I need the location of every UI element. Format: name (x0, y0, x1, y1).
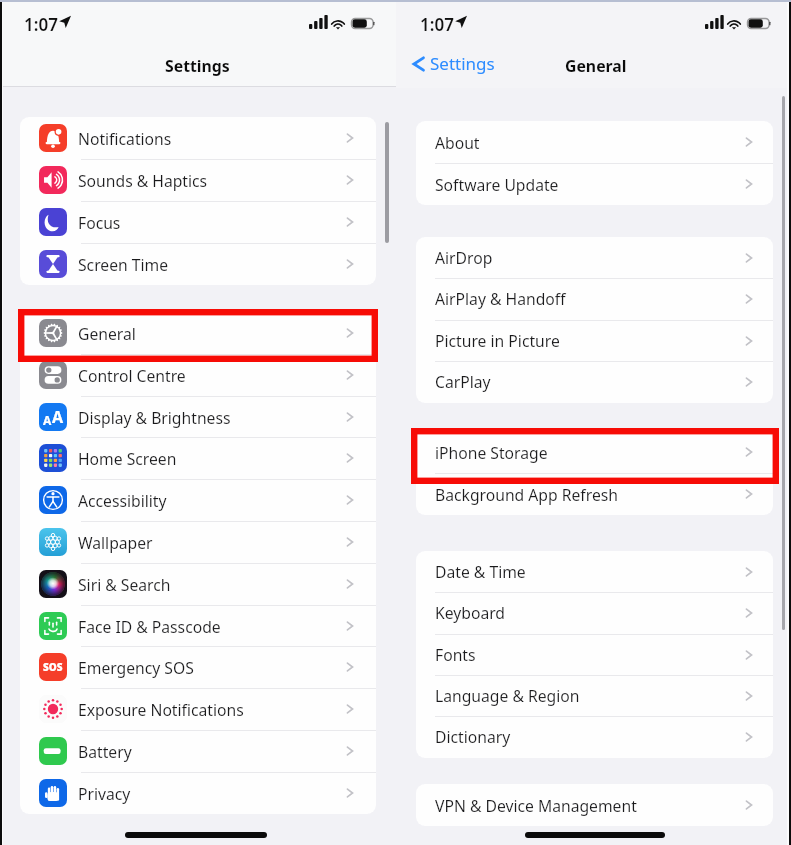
button[interactable]: Dictionary (416, 716, 773, 757)
button[interactable]: Notifications (20, 117, 376, 159)
staticText: VPN & Device Management (435, 795, 637, 816)
staticText: Fonts (435, 644, 476, 665)
button[interactable]: AirDrop (416, 237, 773, 278)
staticText: Battery (78, 741, 132, 762)
staticText: Exposure Notifications (78, 699, 244, 720)
button[interactable]: Focus (20, 201, 376, 243)
staticText: Sounds & Haptics (78, 170, 208, 191)
staticText: Emergency SOS (78, 657, 194, 678)
staticText: About (435, 132, 480, 153)
staticText: Date & Time (435, 561, 526, 582)
button[interactable]: iPhone Storage (416, 431, 773, 473)
button[interactable]: CarPlay (416, 361, 773, 402)
button[interactable]: AirPlay & Handoff (416, 278, 773, 319)
staticText: Privacy (78, 783, 131, 804)
button[interactable]: Battery (20, 730, 376, 772)
staticText: Settings (430, 52, 495, 75)
button[interactable]: Privacy (20, 772, 376, 814)
staticText: Siri & Search (78, 574, 171, 595)
button[interactable]: Date & Time (416, 551, 773, 592)
staticText: Language & Region (435, 685, 580, 706)
staticText: General (565, 55, 627, 77)
button[interactable]: Back to Settings (412, 52, 495, 75)
button[interactable]: About (416, 121, 773, 163)
staticText: Software Update (435, 174, 559, 195)
button[interactable]: Screen Time (20, 243, 376, 285)
staticText: Settings (165, 55, 230, 77)
button[interactable]: Home Screen (20, 437, 376, 479)
button[interactable]: General (20, 312, 376, 354)
staticText: Background App Refresh (435, 484, 618, 505)
button[interactable]: Language & Region (416, 675, 773, 716)
staticText: Face ID & Passcode (78, 616, 221, 637)
staticText: Focus (78, 212, 121, 233)
staticText: Control Centre (78, 365, 186, 386)
staticText: Notifications (78, 128, 172, 149)
staticText: AirDrop (435, 247, 493, 268)
staticText: A (43, 412, 52, 428)
staticText: Picture in Picture (435, 330, 560, 351)
staticText: iPhone Storage (435, 442, 548, 463)
button[interactable]: Picture in Picture (416, 320, 773, 361)
button[interactable]: Background App Refresh (416, 473, 773, 515)
staticText: General (78, 323, 136, 344)
button[interactable]: A (20, 396, 376, 438)
button[interactable]: Siri & Search (20, 563, 376, 605)
staticText: 1:07 (420, 13, 454, 36)
button[interactable]: SOS (20, 646, 376, 688)
staticText: Home Screen (78, 448, 177, 469)
button[interactable]: VPN & Device Management (416, 784, 773, 826)
staticText: Accessibility (78, 490, 167, 511)
button[interactable]: Accessibility (20, 479, 376, 521)
button[interactable]: Keyboard (416, 592, 773, 633)
button[interactable]: Exposure Notifications (20, 688, 376, 730)
staticText: A (52, 406, 64, 428)
staticText: CarPlay (435, 371, 491, 392)
button[interactable]: Wallpaper (20, 521, 376, 563)
staticText: Screen Time (78, 254, 169, 275)
staticText: 1:07 (24, 13, 58, 36)
staticText: Keyboard (435, 602, 505, 623)
button[interactable]: Face ID & Passcode (20, 605, 376, 647)
staticText: AirPlay & Handoff (435, 288, 566, 309)
staticText: Dictionary (435, 726, 511, 747)
staticText: SOS (43, 660, 63, 674)
staticText: Display & Brightness (78, 407, 231, 428)
button[interactable]: Sounds & Haptics (20, 159, 376, 201)
button[interactable]: Software Update (416, 163, 773, 205)
button[interactable]: Control Centre (20, 354, 376, 396)
staticText: Wallpaper (78, 532, 153, 553)
button[interactable]: Fonts (416, 634, 773, 675)
